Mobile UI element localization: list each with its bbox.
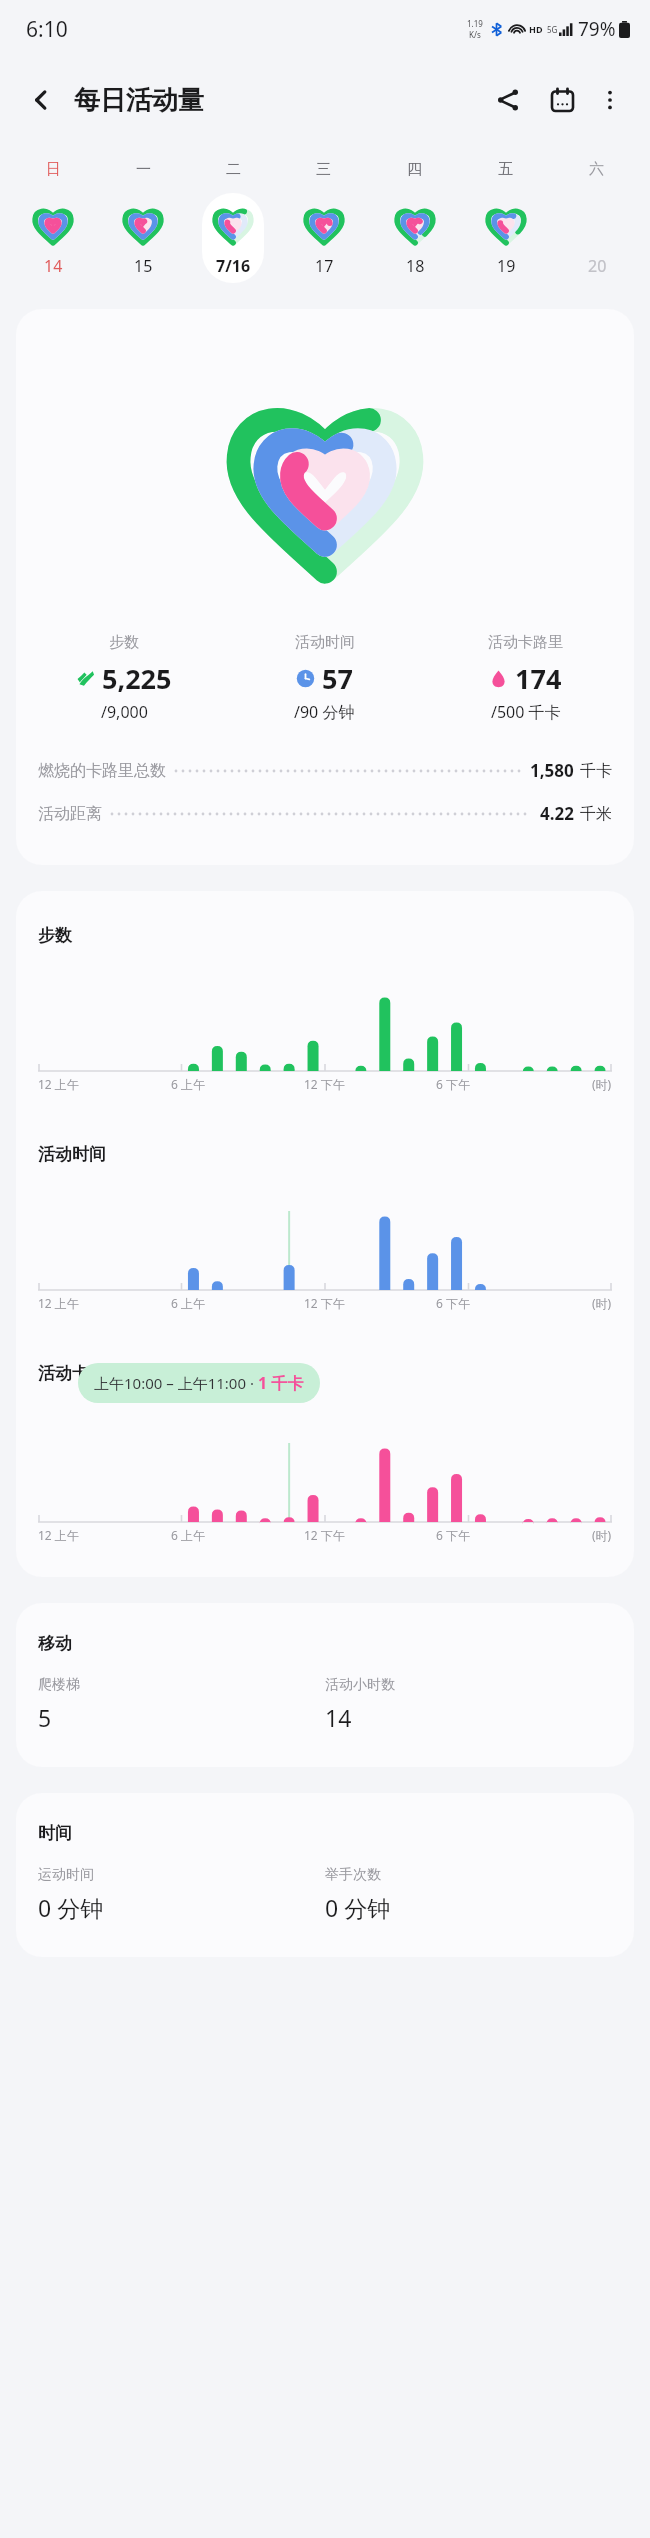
staticText: 千卡	[580, 761, 612, 781]
staticText: 79%	[578, 16, 616, 42]
staticText: /90 分钟	[294, 701, 355, 723]
staticText: 57	[322, 660, 353, 697]
staticText: 18	[406, 255, 425, 277]
staticText: 0 分钟	[325, 1892, 391, 1923]
button[interactable]: 活动距离	[38, 802, 612, 825]
button[interactable]: 18	[369, 193, 460, 283]
staticText: 7/16	[216, 255, 251, 277]
staticText: 活动距离	[38, 804, 102, 824]
staticText: 上午10:00 – 上午11:00 ·	[94, 1373, 258, 1393]
staticText: 6 下午	[436, 1295, 470, 1311]
staticText: 5	[38, 1702, 52, 1733]
staticText: HD	[529, 23, 543, 35]
staticText: 移动	[38, 1633, 72, 1654]
button[interactable]: Calendar	[538, 76, 586, 124]
staticText: 爬楼梯	[38, 1676, 80, 1694]
staticText: 0 分钟	[38, 1892, 104, 1923]
staticText: 三	[316, 160, 331, 179]
button[interactable]: 20	[551, 193, 642, 283]
staticText: 活动小时数	[325, 1676, 395, 1694]
staticText: 举手次数	[325, 1866, 381, 1884]
staticText: 12 下午	[304, 1076, 345, 1092]
staticText: 活动时间	[295, 633, 355, 652]
staticText: 14	[325, 1702, 352, 1733]
staticText: 六	[589, 160, 604, 179]
staticText: 步数	[109, 633, 139, 652]
staticText: 14	[44, 255, 63, 277]
staticText: 二	[226, 160, 241, 179]
button[interactable]: 7/16	[188, 193, 278, 283]
staticText: 1 千卡	[258, 1372, 304, 1394]
staticText: 6 上午	[171, 1295, 205, 1311]
staticText: 1,580	[530, 759, 574, 782]
staticText: 6 上午	[171, 1076, 205, 1092]
staticText: 6 上午	[171, 1527, 205, 1543]
button[interactable]: 14	[8, 193, 98, 283]
staticText: 千米	[580, 804, 612, 824]
staticText: 运动时间	[38, 1866, 94, 1884]
staticText: 燃烧的卡路里总数	[38, 761, 166, 781]
staticText: 每日活动量	[74, 84, 204, 117]
staticText: 五	[498, 160, 513, 179]
staticText: 5,225	[102, 660, 172, 697]
staticText: 活动卡路里	[488, 633, 563, 652]
staticText: 12 上午	[38, 1076, 79, 1092]
staticText: 174	[515, 660, 562, 697]
button[interactable]: 19	[460, 193, 551, 283]
staticText: 6 下午	[436, 1527, 470, 1543]
staticText: 6:10	[26, 15, 68, 44]
staticText: 6 下午	[436, 1076, 470, 1092]
staticText: 19	[497, 255, 516, 277]
staticText: 4.22	[540, 802, 574, 825]
staticText: 时间	[38, 1823, 72, 1844]
staticText: 17	[315, 255, 334, 277]
button[interactable]: 17	[278, 193, 369, 283]
staticText: 1.19	[467, 18, 483, 29]
staticText: (时)	[592, 1076, 612, 1092]
button[interactable]: Back	[18, 77, 64, 123]
staticText: 一	[136, 160, 151, 179]
staticText: 12 下午	[304, 1527, 345, 1543]
button[interactable]: 上午10:00 – 上午11:00 ·	[94, 1372, 304, 1394]
staticText: 12 下午	[304, 1295, 345, 1311]
staticText: 活动时间	[38, 1144, 106, 1165]
staticText: 步数	[38, 925, 72, 946]
staticText: /500 千卡	[491, 701, 561, 723]
staticText: 20	[588, 255, 607, 277]
button[interactable]: 15	[98, 193, 188, 283]
staticText: (时)	[592, 1527, 612, 1543]
staticText: 15	[134, 255, 153, 277]
staticText: 日	[46, 160, 61, 179]
staticText: (时)	[592, 1295, 612, 1311]
staticText: 12 上午	[38, 1527, 79, 1543]
staticText: 活动卡路里	[38, 1363, 123, 1384]
staticText: 12 上午	[38, 1295, 79, 1311]
button[interactable]: 燃烧的卡路里总数	[38, 759, 612, 782]
button[interactable]: More options	[588, 78, 632, 122]
button[interactable]: Share	[484, 76, 532, 124]
staticText: /9,000	[101, 701, 148, 723]
staticText: K/s	[469, 29, 481, 40]
staticText: 5G	[547, 24, 558, 35]
staticText: 四	[407, 160, 422, 179]
